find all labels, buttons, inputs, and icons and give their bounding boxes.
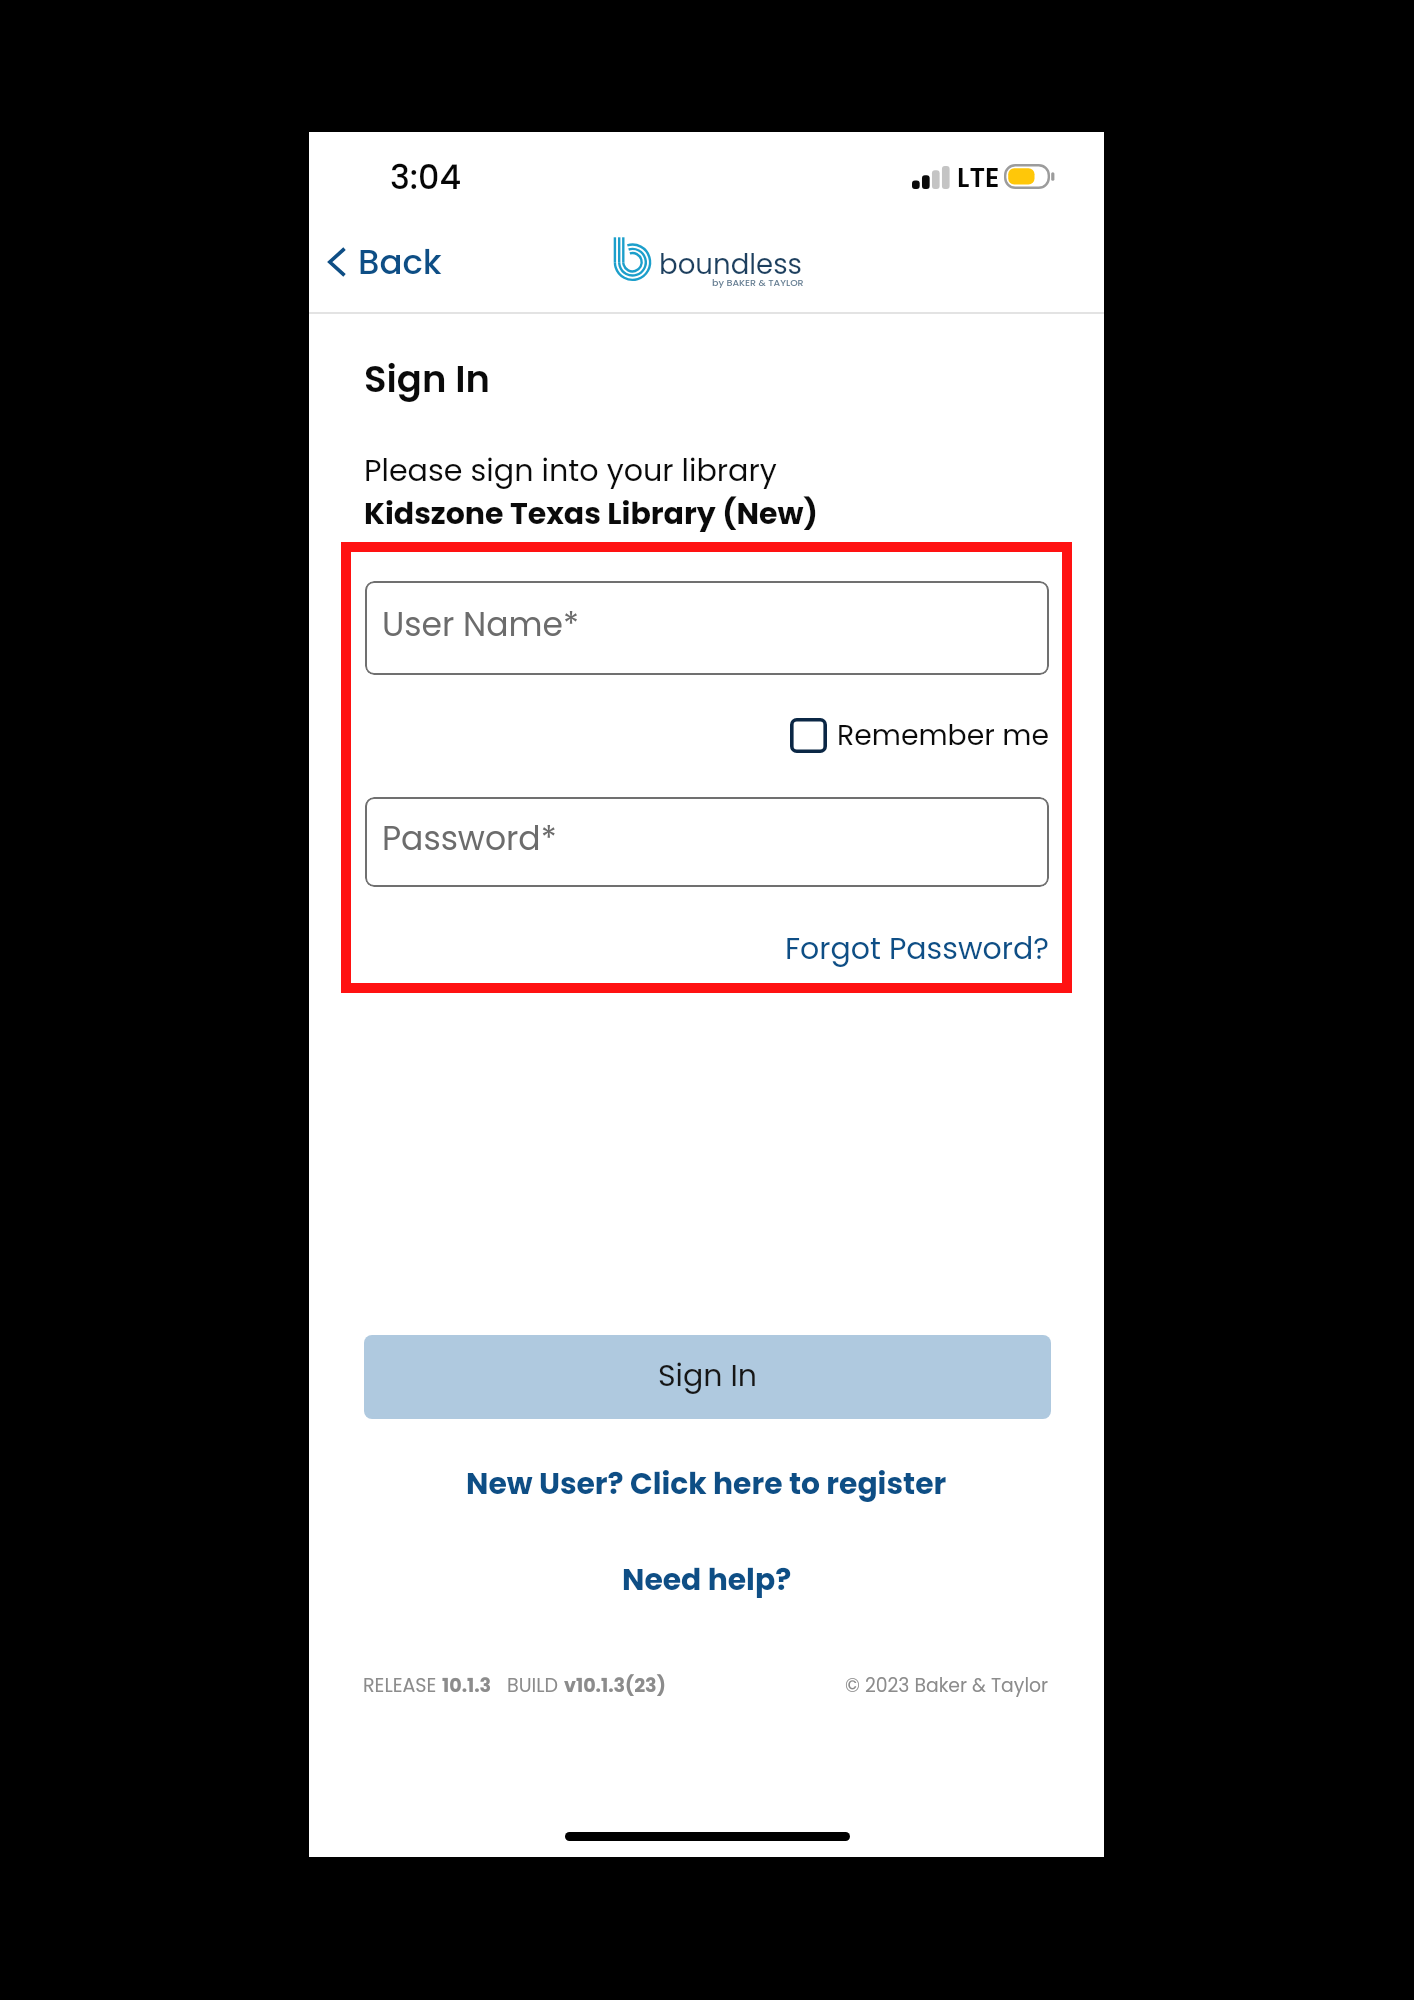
staticText: Kidszone Texas Library (New) — [364, 493, 818, 535]
staticText: User Name* — [382, 601, 580, 647]
staticText: Sign In — [658, 1355, 758, 1397]
staticText: Back — [358, 238, 442, 286]
button[interactable]: Back — [317, 227, 453, 297]
staticText: RELEASE — [363, 1672, 442, 1699]
staticText: v10.1.3(23) — [564, 1672, 666, 1699]
button[interactable]: Sign In — [364, 1335, 1051, 1419]
staticText: LTE — [957, 159, 1000, 197]
staticText: Remember me — [837, 715, 1050, 755]
button[interactable]: Remember me — [782, 707, 1058, 763]
staticText: 3:04 — [390, 154, 462, 201]
other: Battery — [1004, 164, 1055, 189]
staticText: by BAKER & TAYLOR — [712, 276, 804, 289]
staticText: Password* — [382, 815, 557, 861]
staticText: boundless — [659, 245, 802, 284]
other: Cellular signal strength — [912, 166, 949, 189]
button[interactable]: Password* — [365, 797, 1049, 887]
other: Boundless logo — [612, 235, 654, 283]
staticText: Please sign into your library — [364, 449, 777, 491]
staticText: Sign In — [364, 353, 490, 405]
staticText: © 2023 Baker & Taylor — [845, 1672, 1049, 1698]
staticText: 10.1.3 — [442, 1672, 492, 1699]
button[interactable]: Need help? — [616, 1554, 798, 1606]
button[interactable]: Forgot Password? — [783, 922, 1051, 976]
staticText: BUILD — [507, 1672, 564, 1699]
button[interactable]: New User? Click here to register — [460, 1458, 953, 1510]
button[interactable]: User Name* — [365, 581, 1049, 675]
